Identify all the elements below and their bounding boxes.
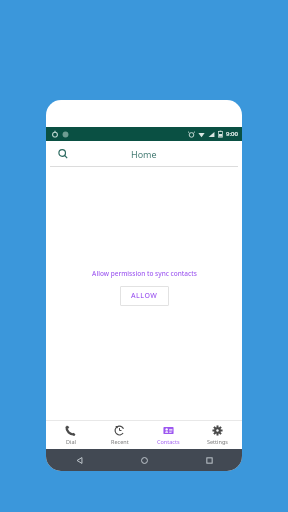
button[interactable]: Home xyxy=(112,449,177,471)
button[interactable]: Recents xyxy=(177,449,242,471)
button[interactable]: ALLOW xyxy=(120,286,169,306)
button[interactable]: Contacts xyxy=(144,421,193,449)
button[interactable]: Dial xyxy=(46,421,95,449)
button[interactable]: Search xyxy=(54,145,72,163)
staticText: Recent xyxy=(111,438,129,445)
staticText: ALLOW xyxy=(131,291,158,301)
staticText: Dial xyxy=(66,438,76,445)
staticText: Settings xyxy=(207,438,228,445)
staticText: 9:00 xyxy=(226,130,238,138)
staticText: Home xyxy=(131,148,157,160)
staticText: Contacts xyxy=(157,438,180,445)
staticText: Allow permission to sync contacts xyxy=(92,269,197,278)
button[interactable]: Recent xyxy=(95,421,144,449)
button[interactable]: Back xyxy=(46,449,112,471)
button[interactable]: Settings xyxy=(193,421,242,449)
